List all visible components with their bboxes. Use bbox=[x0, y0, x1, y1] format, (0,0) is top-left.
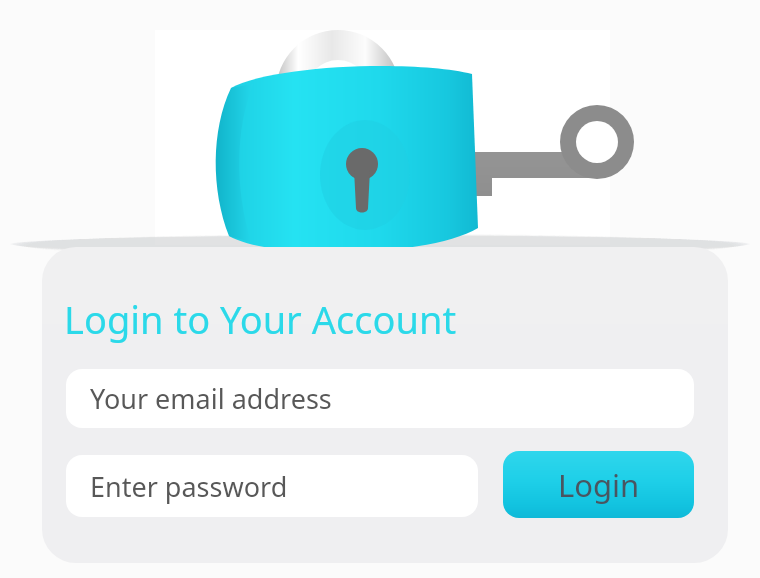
button[interactable]: Login bbox=[503, 451, 694, 518]
button[interactable]: Enter password bbox=[66, 455, 478, 517]
staticText: Login to Your Account bbox=[64, 293, 457, 345]
staticText: Enter password bbox=[90, 468, 288, 505]
staticText: Your email address bbox=[90, 380, 332, 417]
staticText: Login bbox=[558, 464, 640, 506]
button[interactable]: Your email address bbox=[66, 369, 694, 428]
